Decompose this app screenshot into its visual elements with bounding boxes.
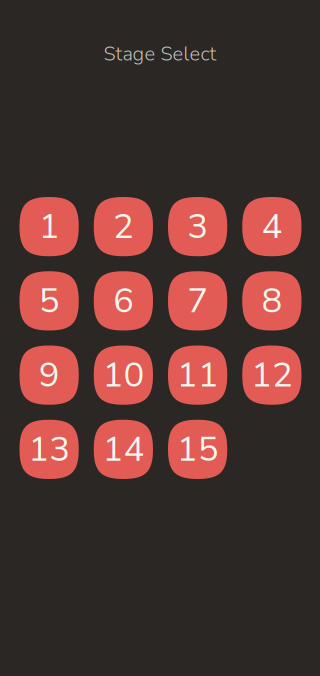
button[interactable]: 14 [94, 420, 153, 479]
staticText: 8 [261, 277, 282, 324]
staticText: 14 [102, 426, 144, 473]
staticText: 3 [187, 203, 208, 250]
button[interactable]: 5 [19, 271, 79, 330]
button[interactable]: 12 [242, 345, 301, 405]
staticText: 7 [187, 277, 208, 324]
staticText: 1 [39, 203, 60, 250]
staticText: 2 [113, 203, 134, 250]
staticText: 4 [261, 203, 282, 250]
button[interactable]: 6 [94, 271, 153, 330]
button[interactable]: 7 [168, 271, 227, 330]
staticText: 15 [177, 426, 219, 473]
staticText: 6 [113, 277, 134, 324]
staticText: 10 [102, 351, 144, 399]
button[interactable]: 9 [19, 345, 79, 405]
staticText: 9 [39, 351, 60, 399]
staticText: 11 [177, 351, 219, 399]
button[interactable]: 11 [168, 345, 227, 405]
button[interactable]: 4 [242, 197, 301, 256]
button[interactable]: 15 [168, 420, 227, 479]
staticText: 5 [39, 277, 60, 324]
button[interactable]: 2 [94, 197, 153, 256]
staticText: 13 [28, 426, 70, 473]
button[interactable]: 3 [168, 197, 227, 256]
staticText: 12 [251, 351, 293, 399]
button[interactable]: 1 [19, 197, 79, 256]
button[interactable]: 13 [19, 420, 79, 479]
button[interactable]: 8 [242, 271, 301, 330]
staticText: Stage Select [103, 40, 216, 68]
button[interactable]: 10 [94, 345, 153, 405]
